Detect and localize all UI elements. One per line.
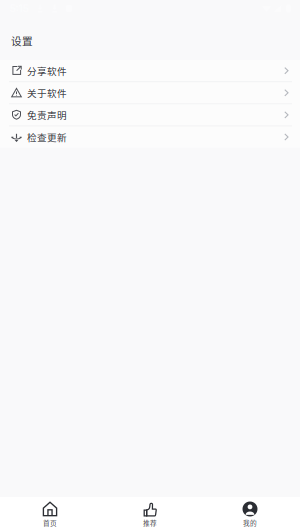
staticText: 分享软件 [27,64,67,78]
button[interactable]: 检查更新 [0,126,300,148]
staticText: 检查更新 [27,130,67,144]
staticText: 首页 [43,518,57,528]
staticText: 设置 [11,33,33,48]
staticText: 免责声明 [27,108,67,122]
button[interactable]: 关于软件 [0,82,300,103]
button[interactable]: 首页 [0,497,100,532]
staticText: 我的 [243,518,257,528]
button[interactable]: 分享软件 [0,60,300,81]
button[interactable]: 我的 [200,497,300,532]
staticText: 推荐 [143,518,157,528]
staticText: 关于软件 [27,86,67,100]
button[interactable]: 免责声明 [0,104,300,126]
button[interactable]: 推荐 [100,497,200,532]
